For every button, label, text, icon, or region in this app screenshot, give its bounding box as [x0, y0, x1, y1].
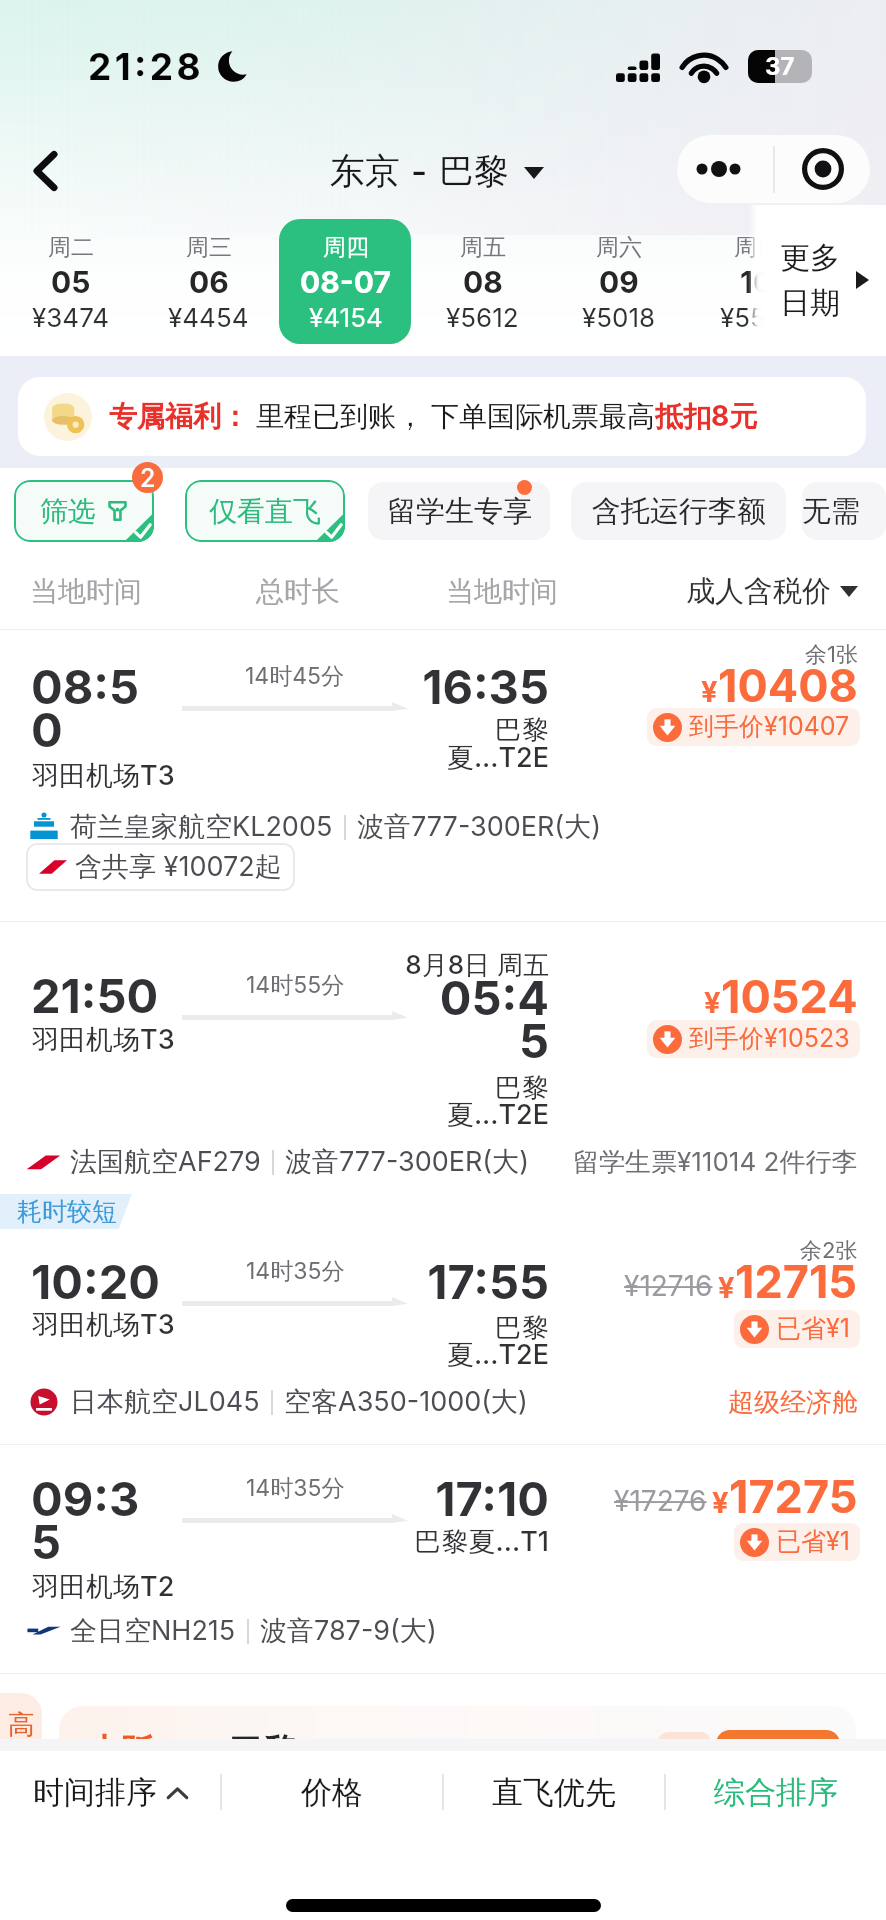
staticText: 巴黎: [439, 149, 509, 193]
staticText: 无需过境签: [802, 493, 886, 530]
button[interactable]: 更多: [748, 205, 886, 355]
staticText: 周四: [323, 233, 369, 262]
staticText: 巴黎: [380, 713, 549, 747]
staticText: 10: [740, 264, 774, 300]
staticText: 含托运行李额: [592, 493, 766, 530]
staticText: 16:35: [414, 658, 549, 715]
staticText: 总时长: [256, 574, 340, 609]
button[interactable]: 无需过境签: [802, 482, 886, 540]
staticText: 下单国际机票最高: [431, 399, 655, 434]
button[interactable]: 时间排序: [0, 1751, 220, 1833]
staticText: 周二: [48, 233, 94, 262]
button[interactable]: 周四: [279, 219, 411, 344]
button[interactable]: 周五: [416, 219, 548, 344]
staticText: 空客A350-1000(大): [284, 1385, 528, 1419]
staticText: 2: [140, 463, 156, 493]
staticText: ¥5612: [446, 302, 519, 333]
staticText: 专属福利：: [109, 399, 249, 434]
staticText: 巴黎: [380, 1311, 549, 1345]
staticText: 已省¥1: [776, 1526, 850, 1558]
button[interactable]: 价格: [222, 1751, 442, 1833]
staticText: 05:45: [414, 969, 549, 1070]
button[interactable]: 直飞优先: [444, 1751, 664, 1833]
staticText: 波音777-300ER(大): [357, 810, 602, 844]
button[interactable]: 周六: [553, 219, 685, 344]
staticText: 夏...T2E: [380, 1338, 549, 1372]
staticText: 09: [599, 264, 639, 300]
staticText: 成人含税价: [686, 573, 831, 610]
staticText: ¥17276: [614, 1484, 707, 1518]
staticText: 08-07: [300, 264, 391, 300]
staticText: 17:10: [414, 1470, 549, 1527]
staticText: 仅看直飞: [209, 494, 321, 529]
staticText: 超级经济舱: [728, 1386, 858, 1419]
button[interactable]: More options: [677, 135, 773, 203]
button[interactable]: 筛选: [14, 480, 154, 542]
staticText: 8月8日 周五: [380, 949, 549, 982]
staticText: 08:50: [31, 658, 168, 759]
staticText: ¥4154: [309, 302, 383, 333]
staticText: 17:55: [414, 1253, 549, 1310]
staticText: ¥: [704, 985, 721, 1020]
staticText: ¥4454: [168, 302, 249, 333]
staticText: 全日空NH215: [70, 1614, 236, 1648]
staticText: 综合排序: [714, 1773, 838, 1812]
staticText: 14时45分: [245, 662, 345, 691]
button[interactable]: 仅看直飞: [185, 480, 345, 542]
button[interactable]: 留学生专享: [368, 482, 550, 540]
staticText: ¥3474: [32, 302, 110, 333]
staticText: -: [411, 150, 428, 192]
staticText: 10408: [718, 658, 858, 712]
staticText: 37: [765, 52, 795, 81]
staticText: ¥5018: [582, 302, 656, 333]
staticText: 时间排序: [33, 1773, 157, 1812]
staticText: ¥: [718, 1270, 735, 1305]
staticText: 当地时间: [446, 574, 558, 609]
staticText: ¥: [701, 674, 718, 709]
button[interactable]: 08:50: [0, 630, 886, 922]
staticText: 05: [51, 264, 91, 300]
staticText: 高: [8, 1708, 35, 1742]
button[interactable]: 专属福利：: [18, 377, 866, 456]
staticText: 周五: [460, 233, 506, 262]
button[interactable]: 09:35: [0, 1444, 886, 1674]
staticText: 含共享 ¥10072起: [75, 850, 282, 884]
staticText: 到手价¥10523: [689, 1023, 850, 1055]
staticText: 抵扣8元: [655, 399, 758, 434]
staticText: 周三: [186, 233, 232, 262]
staticText: 荷兰皇家航空KL2005: [70, 810, 333, 844]
staticText: 14时35分: [246, 1257, 345, 1286]
button[interactable]: 周三: [142, 219, 274, 344]
staticText: 羽田机场T3: [32, 1023, 175, 1057]
staticText: 周日: [734, 233, 780, 262]
button[interactable]: 东京: [326, 146, 548, 196]
button[interactable]: 综合排序: [666, 1751, 886, 1833]
button[interactable]: 含托运行李额: [571, 482, 786, 540]
staticText: 余1张: [805, 641, 858, 669]
button[interactable]: 周二: [5, 219, 137, 344]
button[interactable]: 周日: [690, 219, 822, 344]
button[interactable]: 大阪: [59, 1706, 856, 1786]
staticText: 当地时间: [30, 574, 142, 609]
staticText: 筛选: [40, 494, 96, 529]
staticText: 羽田机场T3: [32, 759, 175, 793]
staticText: 更多: [780, 239, 840, 277]
staticText: 余2张: [800, 1237, 858, 1265]
staticText: 留学生票¥11014 2件行李: [573, 1146, 858, 1179]
staticText: ¥: [712, 1485, 729, 1520]
staticText: 日本航空JL045: [70, 1385, 260, 1419]
staticText: 已省¥1: [776, 1313, 850, 1345]
button[interactable]: 成人含税价: [686, 573, 858, 610]
staticText: 10524: [721, 969, 858, 1023]
staticText: 留学生专享: [387, 493, 532, 530]
button[interactable]: Live activity: [775, 135, 870, 203]
staticText: 法国航空AF279: [70, 1145, 261, 1179]
button[interactable]: 21:50: [0, 921, 886, 1179]
button[interactable]: 10:20: [0, 1233, 886, 1445]
staticText: 直飞优先: [492, 1773, 616, 1812]
button[interactable]: Back: [13, 139, 77, 203]
staticText: 21:28: [88, 44, 205, 89]
staticText: 价格: [301, 1773, 363, 1812]
staticText: 夏...T2E: [380, 1098, 549, 1132]
staticText: 08: [463, 264, 503, 300]
